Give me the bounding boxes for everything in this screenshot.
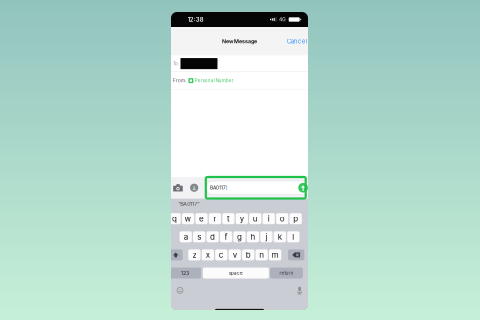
staticText: l	[292, 232, 294, 242]
staticText: d	[210, 232, 215, 242]
button[interactable]: v	[229, 249, 241, 260]
staticText: t	[227, 214, 230, 224]
button[interactable]: Camera	[173, 184, 183, 191]
button[interactable]: m	[269, 249, 281, 260]
staticText: u	[253, 214, 258, 224]
staticText: b	[246, 250, 251, 260]
button[interactable]: space	[203, 267, 269, 278]
staticText: k	[278, 232, 282, 242]
button[interactable]: w	[182, 213, 194, 224]
button[interactable]: g	[233, 231, 246, 242]
button[interactable]: e	[195, 213, 208, 224]
staticText: g	[237, 232, 242, 242]
staticText: i	[268, 214, 270, 224]
staticText: m	[272, 250, 279, 260]
staticText: c	[219, 250, 224, 260]
button[interactable]: p	[289, 213, 302, 224]
staticText: o	[280, 214, 285, 224]
staticText: v	[233, 250, 237, 260]
staticText: 4G	[279, 16, 286, 22]
staticText: p	[293, 214, 298, 224]
button[interactable]: Emoji keyboard	[177, 287, 183, 294]
staticText: From:	[173, 78, 186, 83]
button[interactable]: return	[270, 267, 303, 278]
staticText: BA0117	[210, 185, 226, 191]
button[interactable]: iMessage apps	[190, 184, 198, 192]
staticText: 12:38	[188, 16, 204, 23]
staticText: return	[279, 270, 293, 276]
button[interactable]: Shift	[169, 249, 183, 260]
button[interactable]: y	[236, 213, 248, 224]
button[interactable]: t	[222, 213, 234, 224]
staticText: “BA0117”	[178, 200, 199, 207]
staticText: s	[197, 232, 201, 242]
staticText: e	[199, 214, 204, 224]
staticText: f	[225, 232, 228, 242]
button[interactable]: f	[220, 231, 232, 242]
staticText: space	[229, 270, 243, 276]
staticText: w	[185, 214, 192, 224]
button[interactable]: n	[255, 249, 268, 260]
button[interactable]: r	[209, 213, 221, 224]
staticText: j	[265, 232, 267, 242]
staticText: Cancel	[287, 38, 307, 45]
staticText: To:	[173, 61, 179, 66]
staticText: Personal Number	[195, 78, 234, 83]
button[interactable]: q	[168, 213, 181, 224]
staticText: a	[184, 232, 188, 242]
button[interactable]: h	[247, 231, 259, 242]
staticText: x	[206, 250, 210, 260]
button[interactable]: b	[242, 249, 254, 260]
button[interactable]: c	[215, 249, 227, 260]
staticText: y	[240, 214, 244, 224]
button[interactable]: x	[202, 249, 214, 260]
staticText: z	[192, 250, 196, 260]
button[interactable]: k	[274, 231, 286, 242]
button[interactable]: 123	[169, 267, 201, 278]
button[interactable]: Dictation	[297, 286, 302, 295]
staticText: New Message	[222, 38, 257, 45]
button[interactable]: i	[263, 213, 275, 224]
button[interactable]: z	[188, 249, 200, 260]
button[interactable]: l	[287, 231, 299, 242]
button[interactable]: Cancel	[285, 35, 308, 48]
button[interactable]: u	[249, 213, 261, 224]
staticText: r	[213, 214, 216, 224]
staticText: h	[250, 232, 255, 242]
button[interactable]: a	[180, 231, 192, 242]
staticText: n	[259, 250, 264, 260]
button[interactable]: j	[260, 231, 272, 242]
button[interactable]: s	[193, 231, 205, 242]
button[interactable]: o	[276, 213, 288, 224]
button[interactable]: d	[206, 231, 219, 242]
button[interactable]: Delete	[288, 249, 304, 260]
staticText: 123	[181, 270, 189, 276]
staticText: q	[172, 214, 177, 224]
